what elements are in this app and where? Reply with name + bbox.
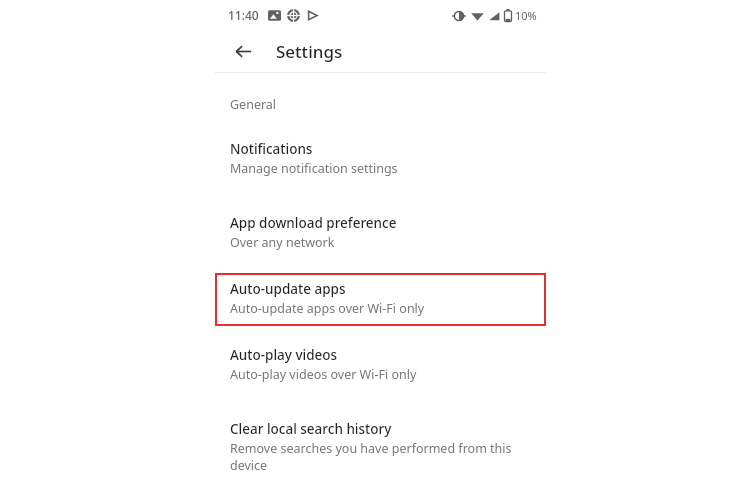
staticText: Remove searches you have performed from …	[230, 440, 534, 473]
staticText: General	[230, 96, 277, 113]
staticText: Clear local search history	[230, 420, 392, 438]
staticText: Notifications	[230, 140, 313, 158]
staticText: 11:40	[228, 7, 259, 23]
staticText: Auto-play videos	[230, 346, 338, 364]
button[interactable]: Back	[226, 34, 260, 68]
staticText: Auto-update apps over Wi-Fi only	[230, 300, 425, 317]
staticText: 10%	[515, 8, 537, 23]
button[interactable]: Clear local search history	[215, 413, 546, 482]
button[interactable]: Auto-update apps	[215, 273, 546, 326]
staticText: Auto-update apps	[230, 280, 346, 298]
button[interactable]: Notifications	[215, 133, 546, 186]
button[interactable]: App download preference	[215, 207, 546, 260]
staticText: Over any network	[230, 234, 335, 251]
staticText: Manage notification settings	[230, 160, 398, 177]
button[interactable]: Auto-play videos	[215, 339, 546, 392]
staticText: App download preference	[230, 214, 397, 232]
staticText: Auto-play videos over Wi-Fi only	[230, 366, 417, 383]
staticText: Settings	[276, 40, 343, 63]
